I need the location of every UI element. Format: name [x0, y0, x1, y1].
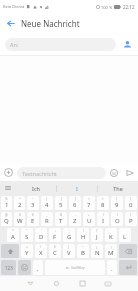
- button[interactable]: Löschen: [119, 244, 137, 258]
- button[interactable]: Textnachricht: [17, 167, 106, 179]
- staticText: =: [26, 245, 28, 249]
- button[interactable]: Senden: [122, 165, 138, 181]
- button[interactable]: ]: [69, 196, 81, 210]
- staticText: _: [46, 213, 48, 217]
- button[interactable]: ^: [14, 196, 25, 210]
- staticText: O: [115, 217, 120, 225]
- button[interactable]: /: [125, 212, 137, 226]
- staticText: 2: [18, 201, 22, 209]
- button[interactable]: @: [1, 212, 12, 226]
- button[interactable]: :: [49, 228, 61, 242]
- button[interactable]: Ich: [16, 181, 56, 195]
- staticText: 9: [115, 201, 119, 209]
- staticText: F: [53, 233, 57, 241]
- staticText: I: [102, 217, 105, 225]
- button[interactable]: The: [98, 181, 138, 195]
- button[interactable]: }: [125, 196, 137, 210]
- button[interactable]: -: [69, 212, 81, 226]
- button[interactable]: \: [35, 244, 47, 258]
- button[interactable]: Emoji: [106, 165, 122, 181]
- button[interactable]: ;: [63, 228, 75, 242]
- button[interactable]: <: [83, 196, 95, 210]
- button[interactable]: +: [83, 212, 95, 226]
- button[interactable]: ): [111, 212, 123, 226]
- button[interactable]: ¿: [91, 244, 103, 258]
- button[interactable]: Anhang hinzufügen: [0, 164, 17, 181]
- button[interactable]: Tastatur ausblenden: [95, 276, 121, 291]
- staticText: #: [19, 213, 21, 217]
- button[interactable]: §: [49, 244, 61, 258]
- staticText: G: [67, 233, 72, 241]
- staticText: H: [81, 233, 86, 241]
- button[interactable]: 123: [1, 260, 16, 275]
- staticText: 123: [5, 265, 13, 271]
- staticText: +: [88, 213, 90, 217]
- button[interactable]: ,: [33, 260, 43, 275]
- button[interactable]: ~: [27, 196, 39, 210]
- button[interactable]: ~: [77, 244, 89, 258]
- button[interactable]: .: [107, 260, 117, 275]
- button[interactable]: L: [119, 228, 131, 242]
- staticText: >: [102, 197, 104, 201]
- button[interactable]: Eingabe: [119, 260, 137, 275]
- staticText: ¿: [96, 245, 98, 249]
- button[interactable]: Zurück: [0, 13, 21, 34]
- staticText: Z: [73, 217, 77, 225]
- staticText: §: [54, 245, 56, 249]
- staticText: %: [5, 197, 8, 201]
- button[interactable]: Kontakt hinzufügen: [116, 34, 138, 55]
- button[interactable]: #: [14, 212, 25, 226]
- staticText: 0: [129, 201, 133, 209]
- staticText: M: [108, 249, 114, 257]
- staticText: W: [17, 217, 23, 225]
- staticText: <: [88, 197, 90, 201]
- staticText: ?: [96, 229, 98, 233]
- button[interactable]: |: [41, 196, 53, 210]
- button[interactable]: ¡: [105, 244, 117, 258]
- button[interactable]: Emoji: [18, 260, 31, 275]
- button[interactable]: _: [41, 212, 53, 226]
- button[interactable]: !: [77, 228, 89, 242]
- staticText: 6: [73, 201, 77, 209]
- button[interactable]: SwiftKey: [45, 260, 105, 275]
- button[interactable]: ?: [91, 228, 103, 242]
- button[interactable]: I: [57, 181, 97, 195]
- button[interactable]: {: [111, 196, 123, 210]
- button[interactable]: An:: [5, 38, 116, 51]
- button[interactable]: %: [1, 196, 12, 210]
- button[interactable]: &: [55, 212, 67, 226]
- button[interactable]: Menü: [0, 181, 16, 195]
- staticText: C: [53, 249, 57, 257]
- staticText: L: [123, 233, 127, 241]
- staticText: 3: [31, 201, 35, 209]
- staticText: |: [46, 197, 48, 201]
- button[interactable]: Umschalt: [1, 244, 19, 258]
- button[interactable]: *: [7, 228, 19, 242]
- staticText: -: [75, 213, 76, 217]
- staticText: T: [59, 217, 63, 225]
- button[interactable]: €: [27, 212, 39, 226]
- button[interactable]: ': [35, 228, 47, 242]
- staticText: &: [60, 213, 63, 217]
- staticText: ;: [69, 229, 70, 233]
- staticText: K: [109, 233, 113, 241]
- staticText: Kein Dienst: [3, 4, 25, 9]
- button[interactable]: [: [55, 196, 67, 210]
- button[interactable]: (: [97, 212, 109, 226]
- staticText: Y: [25, 249, 29, 257]
- staticText: @: [5, 213, 8, 217]
- button[interactable]: =: [21, 244, 33, 258]
- staticText: 100 %: [101, 5, 113, 10]
- staticText: S: [25, 233, 29, 241]
- staticText: V: [67, 249, 71, 257]
- button[interactable]: Startseite: [43, 276, 69, 291]
- button[interactable]: Zurück: [17, 276, 43, 291]
- button[interactable]: >: [97, 196, 109, 210]
- staticText: !: [83, 229, 84, 233]
- button[interactable]: |: [63, 244, 75, 258]
- staticText: }: [130, 197, 132, 201]
- button[interactable]: ": [21, 228, 33, 242]
- button[interactable]: K: [105, 228, 117, 242]
- button[interactable]: Übersicht: [69, 276, 95, 291]
